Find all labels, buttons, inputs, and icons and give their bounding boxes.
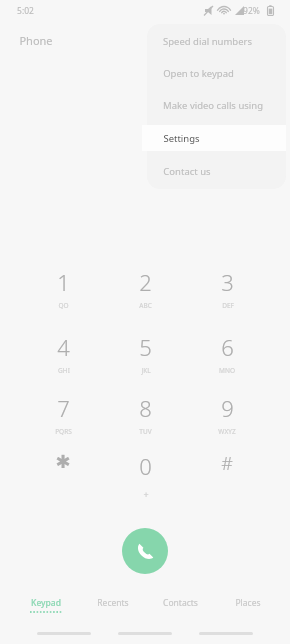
button[interactable]: 1 <box>22 267 104 323</box>
staticText: PQRS <box>55 427 72 436</box>
button[interactable]: 7 <box>22 393 104 449</box>
staticText: 0 <box>139 451 152 481</box>
button[interactable]: Make video calls using <box>147 92 286 118</box>
button[interactable]: 4 <box>22 332 104 388</box>
staticText: 2 <box>139 267 152 297</box>
button[interactable]: Back <box>197 626 255 640</box>
staticText: Recents <box>97 597 129 609</box>
staticText: 4 <box>57 332 70 362</box>
staticText: Contacts <box>163 597 198 609</box>
button[interactable]: Places <box>216 597 280 619</box>
button[interactable]: 8 <box>104 393 186 449</box>
button[interactable]: Settings <box>142 125 286 151</box>
staticText: 9 <box>221 393 234 423</box>
button[interactable]: 2 <box>104 267 186 323</box>
staticText: Settings <box>163 132 200 145</box>
button[interactable]: Call <box>122 528 168 574</box>
staticText: Speed dial numbers <box>163 35 252 48</box>
staticText: ABC <box>139 301 152 310</box>
button[interactable]: Home <box>116 626 174 640</box>
staticText: TUV <box>139 427 152 436</box>
staticText: DEF <box>222 301 234 310</box>
staticText: Contact us <box>163 165 211 178</box>
button[interactable]: 3 <box>186 267 268 323</box>
staticText: GHI <box>58 366 70 375</box>
button[interactable]: # <box>186 451 268 507</box>
button[interactable]: 9 <box>186 393 268 449</box>
button[interactable]: 6 <box>186 332 268 388</box>
staticText: Phone <box>19 33 53 48</box>
staticText: WXYZ <box>218 427 236 436</box>
staticText: 5 <box>139 332 152 362</box>
button[interactable]: ✱ <box>22 451 104 507</box>
staticText: 8 <box>139 393 152 423</box>
button[interactable]: Contact us <box>147 158 286 184</box>
button[interactable]: Recents <box>81 597 145 619</box>
staticText: Places <box>235 597 261 609</box>
button[interactable]: Contacts <box>148 597 212 619</box>
button[interactable]: 0 <box>104 451 186 507</box>
button[interactable]: Keypad <box>14 597 78 619</box>
staticText: Keypad <box>31 597 61 609</box>
staticText: 1 <box>57 267 70 297</box>
staticText: MNO <box>219 366 235 375</box>
staticText: 5:02 <box>17 5 34 17</box>
staticText: ✱ <box>55 451 71 472</box>
staticText: JKL <box>141 366 151 375</box>
button[interactable]: Speed dial numbers <box>147 28 286 54</box>
staticText: 3 <box>221 267 234 297</box>
staticText: Make video calls using <box>163 99 263 112</box>
staticText: # <box>221 451 233 476</box>
staticText: 7 <box>57 393 70 423</box>
staticText: Open to keypad <box>163 67 234 80</box>
staticText: 6 <box>221 332 234 362</box>
staticText: QO <box>58 301 69 310</box>
button[interactable]: Open to keypad <box>147 60 286 86</box>
button[interactable]: 5 <box>104 332 186 388</box>
staticText: 92% <box>243 5 260 17</box>
staticText: + <box>143 488 149 500</box>
button[interactable]: Recents <box>35 626 93 640</box>
